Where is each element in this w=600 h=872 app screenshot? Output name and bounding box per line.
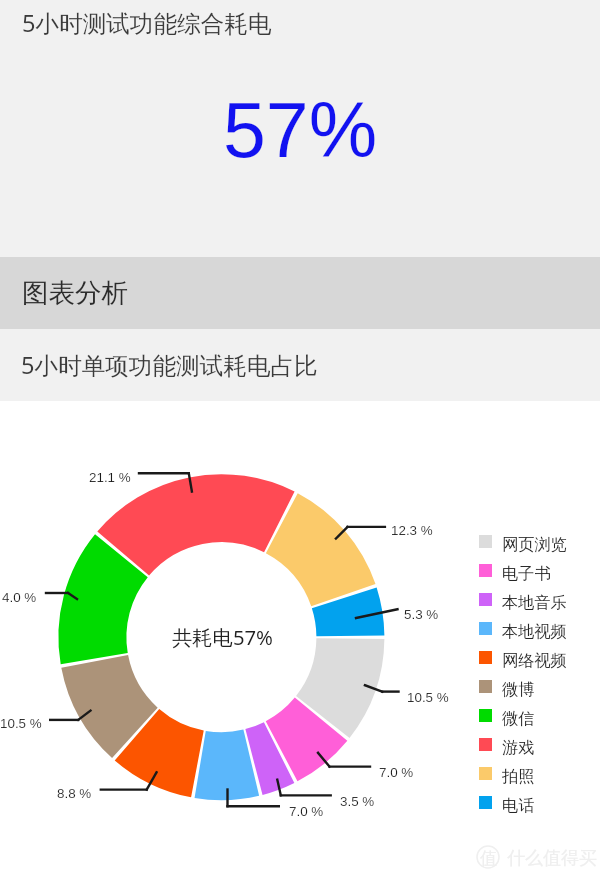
- staticText: 4.0 %: [2, 590, 37, 605]
- staticText: 57%: [223, 87, 378, 173]
- staticText: 拍照: [502, 766, 535, 786]
- staticText: 7.0 %: [379, 765, 414, 780]
- staticText: 21.1 %: [89, 470, 131, 485]
- button[interactable]: 本地视频: [479, 621, 567, 650]
- button[interactable]: 微博: [479, 679, 535, 708]
- staticText: 5小时测试功能综合耗电: [22, 7, 272, 39]
- staticText: 网页浏览: [502, 534, 567, 554]
- button[interactable]: 拍照: [479, 766, 535, 795]
- staticText: 电话: [502, 795, 535, 815]
- staticText: 值: [480, 848, 497, 869]
- staticText: 12.3 %: [391, 523, 433, 538]
- staticText: 微博: [502, 679, 535, 699]
- button[interactable]: 电子书: [479, 563, 551, 592]
- button[interactable]: 网络视频: [479, 650, 567, 679]
- staticText: 3.5 %: [340, 794, 375, 809]
- button[interactable]: 本地音乐: [479, 592, 567, 621]
- staticText: 共耗电57%: [172, 623, 273, 651]
- staticText: 7.0 %: [289, 804, 324, 819]
- staticText: 游戏: [502, 737, 535, 757]
- staticText: 8.8 %: [57, 786, 92, 801]
- staticText: 电子书: [502, 563, 551, 583]
- staticText: 图表分析: [22, 276, 128, 309]
- staticText: 本地音乐: [502, 592, 567, 612]
- button[interactable]: 微信: [479, 708, 535, 737]
- button[interactable]: 网页浏览: [479, 534, 567, 563]
- button[interactable]: 电话: [479, 795, 535, 824]
- button[interactable]: 游戏: [479, 737, 535, 766]
- staticText: 微信: [502, 708, 535, 728]
- staticText: 什么值得买: [507, 847, 597, 870]
- staticText: 本地视频: [502, 621, 567, 641]
- staticText: 10.5 %: [407, 690, 449, 705]
- staticText: 5.3 %: [404, 607, 439, 622]
- staticText: 10.5 %: [0, 716, 42, 731]
- button[interactable]: 图表分析: [0, 257, 600, 329]
- staticText: 5小时单项功能测试耗电占比: [21, 349, 318, 381]
- staticText: 网络视频: [502, 650, 567, 670]
